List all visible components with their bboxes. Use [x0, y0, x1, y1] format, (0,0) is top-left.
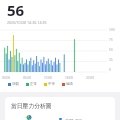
staticText: 75 — [109, 38, 113, 42]
staticText: 放鬆 46% — [65, 118, 83, 120]
staticText: 56 — [7, 0, 25, 20]
button[interactable]: 偏高 — [62, 82, 74, 87]
staticText: 100 — [109, 28, 115, 32]
staticText: 12:00 — [44, 76, 53, 80]
staticText: 00:00 — [2, 76, 11, 80]
staticText: 06:00 — [23, 76, 32, 80]
staticText: 18:00 — [65, 76, 74, 80]
staticText: 當日壓力分析圖 — [11, 102, 52, 109]
other: Daily stress distribution pie chart — [11, 115, 47, 120]
staticText: 放鬆 — [12, 82, 20, 87]
button[interactable]: 中等 — [44, 82, 56, 87]
button[interactable]: 正常 — [26, 82, 38, 87]
staticText: 50 — [109, 48, 113, 52]
staticText: 0 — [109, 68, 111, 72]
staticText: 偏高 — [66, 82, 74, 87]
button[interactable]: 放鬆 46% — [59, 118, 83, 120]
staticText: 中等 — [48, 82, 56, 87]
button[interactable]: 放鬆 — [8, 82, 20, 87]
staticText: 正常 — [30, 82, 38, 87]
button[interactable]: 當日壓力分析圖 — [5, 97, 115, 120]
staticText: 23:59 — [86, 76, 95, 80]
staticText: 2020/10/28 14:30-14:35 — [7, 20, 47, 25]
staticText: 25 — [109, 58, 113, 62]
